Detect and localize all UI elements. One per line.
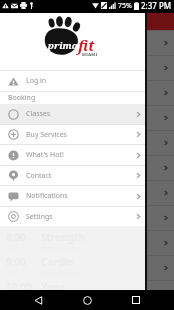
- staticText: 6:00: [6, 282, 26, 296]
- button[interactable]: 8:00: [0, 30, 174, 55]
- staticText: Lisa Moss: [41, 196, 69, 204]
- staticText: AM: [9, 71, 19, 79]
- button[interactable]: Settings: [0, 207, 145, 226]
- staticText: primal: [48, 39, 82, 52]
- button[interactable]: 5:00: [0, 255, 174, 280]
- button[interactable]: 6:00: [0, 280, 174, 305]
- staticText: Contact: [26, 171, 52, 181]
- staticText: Spin: [41, 132, 63, 146]
- staticText: Settings: [26, 212, 53, 222]
- staticText: Kelly Sullivan: [41, 46, 78, 54]
- button[interactable]: 3:00: [0, 205, 174, 230]
- staticText: Andrea Kerr: [41, 146, 75, 154]
- staticText: 3:00: [6, 207, 26, 221]
- staticText: 1:00: [6, 157, 26, 171]
- staticText: Pilates: [41, 282, 75, 296]
- staticText: PM: [9, 146, 19, 154]
- button[interactable]: 2:00: [0, 180, 174, 205]
- staticText: 10:00: [6, 82, 32, 96]
- staticText: Notifications: [26, 191, 68, 201]
- button[interactable]: Notifications: [0, 186, 145, 206]
- staticText: Mark Ruiz: [41, 296, 69, 304]
- button[interactable]: Contact: [0, 166, 145, 185]
- staticText: 10:00: [6, 280, 32, 294]
- button[interactable]: 4:00: [0, 230, 174, 255]
- staticText: Classes: [26, 109, 51, 119]
- button[interactable]: 12:00: [0, 130, 174, 155]
- staticText: 2:37 PM: [141, 0, 172, 11]
- staticText: AM: [9, 96, 19, 104]
- staticText: Yoga: [41, 280, 66, 294]
- button[interactable]: Back: [27, 290, 49, 310]
- staticText: Boxing: [41, 157, 76, 171]
- staticText: 11:00: [6, 107, 32, 121]
- staticText: PM: [9, 221, 19, 229]
- staticText: 12:00: [6, 132, 32, 146]
- button[interactable]: 9:00: [0, 55, 174, 80]
- staticText: Booking: [8, 93, 36, 103]
- button[interactable]: 11:00: [0, 105, 174, 130]
- button[interactable]: Recent apps: [125, 290, 147, 310]
- staticText: 2:00: [6, 182, 26, 196]
- staticText: 9:00: [6, 57, 26, 71]
- staticText: fit: [78, 35, 95, 55]
- button[interactable]: 1:00: [0, 155, 174, 180]
- staticText: AM: [9, 121, 19, 129]
- staticText: Strength: [41, 32, 85, 46]
- staticText: PM: [9, 196, 19, 204]
- staticText: Mark Ruiz: [41, 121, 69, 129]
- staticText: Kathy Sullivan: [41, 294, 81, 302]
- staticText: Ron Castle: [41, 171, 71, 179]
- button[interactable]: Buy Services: [0, 125, 145, 144]
- staticText: HIIT: [41, 182, 63, 196]
- staticText: Cardio: [41, 57, 74, 71]
- staticText: Yoga: [41, 82, 66, 96]
- button[interactable]: What's Hot!: [0, 145, 145, 165]
- button[interactable]: Classes: [0, 104, 145, 124]
- staticText: Log in: [26, 76, 47, 86]
- staticText: Strength: [41, 207, 85, 221]
- staticText: What's Hot!: [26, 150, 64, 160]
- button[interactable]: Log in: [0, 71, 145, 91]
- button[interactable]: 10:00: [0, 80, 174, 105]
- staticText: 75%: [118, 1, 132, 11]
- staticText: Buy Services: [26, 130, 67, 140]
- staticText: Pilates: [41, 107, 75, 121]
- staticText: MIAMI: [82, 52, 98, 57]
- button[interactable]: Home: [76, 290, 98, 310]
- staticText: PM: [9, 171, 19, 179]
- staticText: Kelly Sullivan: [41, 221, 78, 229]
